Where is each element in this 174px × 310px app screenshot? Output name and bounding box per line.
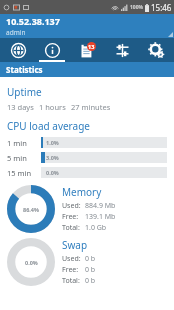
staticText: 13 bbox=[88, 43, 95, 50]
staticText: Free: bbox=[62, 212, 79, 222]
staticText: 0 b bbox=[85, 276, 96, 286]
staticText: Total: bbox=[62, 223, 80, 233]
staticText: 100% bbox=[130, 4, 144, 11]
staticText: 10.52.38.137 bbox=[6, 15, 60, 27]
staticText: 1.0% bbox=[46, 139, 59, 146]
staticText: Memory bbox=[62, 185, 102, 199]
button[interactable]: Controls bbox=[105, 38, 139, 62]
staticText: admin bbox=[6, 28, 26, 37]
staticText: 884.9 Mb bbox=[85, 201, 116, 211]
staticText: 1 hours bbox=[39, 102, 66, 112]
staticText: 139.1 Mb bbox=[85, 212, 116, 222]
button[interactable]: 86.4% bbox=[6, 184, 174, 234]
staticText: 1.0 Gb bbox=[85, 223, 107, 233]
button[interactable]: Network bbox=[1, 38, 35, 62]
button[interactable]: Tasks bbox=[70, 38, 104, 62]
staticText: 86.4% bbox=[23, 206, 39, 213]
staticText: Used: bbox=[62, 254, 81, 264]
button[interactable]: Information bbox=[35, 38, 69, 62]
staticText: CPU load average bbox=[7, 119, 90, 133]
staticText: Uptime bbox=[7, 85, 42, 99]
staticText: 0 b bbox=[85, 254, 96, 264]
staticText: Used: bbox=[62, 201, 81, 211]
staticText: 15:46 bbox=[151, 2, 172, 13]
button[interactable]: Settings bbox=[139, 38, 173, 62]
staticText: 0.0% bbox=[46, 169, 59, 176]
staticText: Swap bbox=[62, 238, 88, 252]
staticText: 5 min bbox=[7, 153, 27, 163]
staticText: 15 min bbox=[7, 168, 32, 178]
staticText: Total: bbox=[62, 276, 80, 286]
staticText: 1 min bbox=[7, 138, 27, 148]
staticText: Free: bbox=[62, 265, 79, 275]
button[interactable]: 0.0% bbox=[6, 237, 174, 287]
staticText: 13 days bbox=[7, 102, 34, 112]
staticText: 3.0% bbox=[46, 154, 59, 161]
staticText: 0.0% bbox=[25, 259, 38, 266]
staticText: Statistics bbox=[6, 64, 43, 75]
staticText: 27 minutes bbox=[71, 102, 111, 112]
staticText: 0 b bbox=[85, 265, 96, 275]
